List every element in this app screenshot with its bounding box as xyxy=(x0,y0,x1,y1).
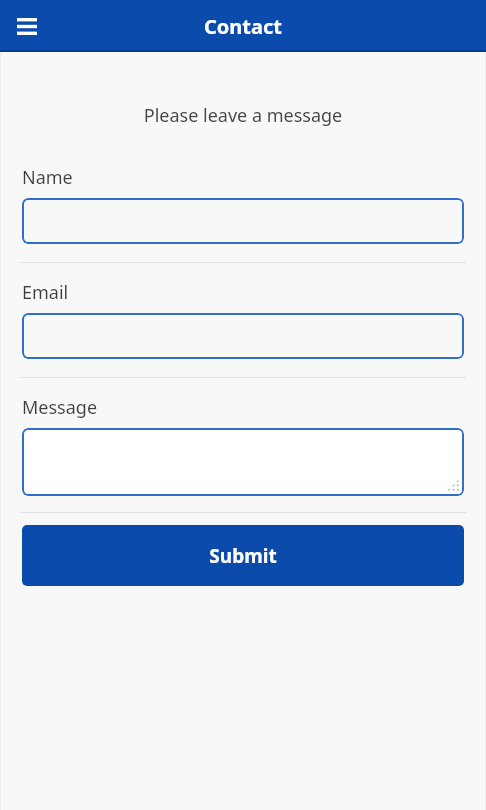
button[interactable]: Open navigation menu xyxy=(7,6,47,46)
staticText: Submit xyxy=(209,543,277,569)
button[interactable]: Email input field xyxy=(22,313,464,359)
button[interactable]: Submit xyxy=(22,525,464,586)
button[interactable]: Name input field xyxy=(22,198,464,244)
staticText: Please leave a message xyxy=(0,103,486,128)
staticText: Contact xyxy=(204,13,282,40)
staticText: Name xyxy=(22,165,73,190)
staticText: Message xyxy=(22,395,98,420)
staticText: Email xyxy=(22,280,69,305)
button[interactable]: Message text area xyxy=(22,428,464,496)
